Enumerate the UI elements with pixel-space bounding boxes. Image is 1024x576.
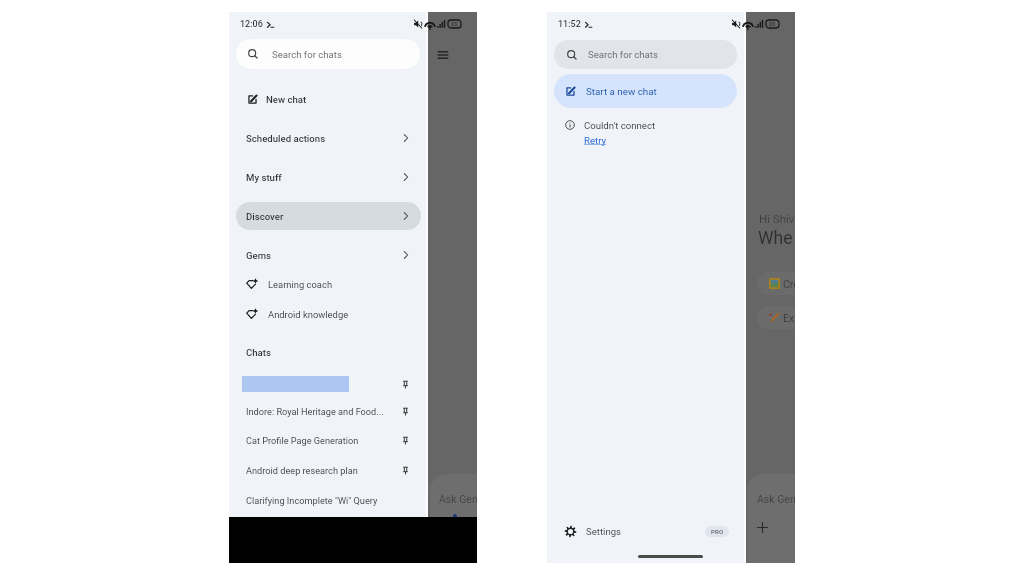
button[interactable]: Discover — [236, 202, 421, 230]
staticText: Start a new chat — [586, 86, 657, 97]
button[interactable]: Gems — [236, 241, 421, 269]
staticText: 12:06 — [240, 19, 263, 30]
staticText: Gems — [246, 250, 271, 261]
staticText: Exp — [783, 312, 795, 324]
staticText: Cre — [783, 278, 795, 290]
button[interactable]: Add attachment — [753, 518, 772, 537]
staticText: My stuff — [246, 172, 282, 183]
button[interactable]: Pin chat — [395, 397, 415, 425]
button[interactable]: Retry — [584, 134, 607, 146]
staticText: 23 — [451, 21, 458, 27]
button[interactable]: Cat Profile Page Generation — [229, 426, 428, 454]
button[interactable]: Pin chat — [395, 370, 415, 398]
staticText: Ask Gem — [757, 493, 795, 505]
button[interactable]: My stuff — [236, 163, 421, 191]
button[interactable]: Settings — [547, 517, 746, 546]
staticText: New chat — [266, 94, 307, 105]
button[interactable]: Start a new chat — [554, 74, 737, 108]
button[interactable]: Android deep research plan — [229, 456, 428, 484]
staticText: Chats — [246, 347, 271, 358]
button[interactable]: New chat — [236, 85, 421, 113]
staticText: Clarifying Incomplete "Wi" Query — [246, 495, 378, 506]
staticText: 11:52 — [558, 19, 581, 30]
button[interactable]: Search for chats — [236, 39, 420, 69]
staticText: Cat Profile Page Generation — [246, 435, 359, 446]
button[interactable]: Selected chat — [229, 370, 428, 398]
button[interactable]: Indore: Royal Heritage and Food... — [229, 397, 428, 425]
staticText: Android deep research plan — [246, 465, 358, 476]
staticText: Ask Gem — [439, 493, 477, 505]
staticText: Android knowledge — [268, 309, 349, 320]
button[interactable]: Learning coach — [236, 270, 421, 298]
button[interactable]: Android knowledge — [236, 300, 421, 328]
button[interactable]: Search for chats — [554, 40, 737, 69]
staticText: Indore: Royal Heritage and Food... — [246, 406, 384, 417]
staticText: Search for chats — [588, 49, 658, 60]
staticText: Scheduled actions — [246, 133, 326, 144]
staticText: Hi Shiv — [759, 212, 795, 225]
staticText: Settings — [586, 526, 622, 537]
staticText: Search for chats — [272, 49, 342, 60]
staticText: Retry — [584, 135, 607, 146]
staticText: Discover — [246, 211, 284, 222]
button[interactable]: Clarifying Incomplete "Wi" Query — [229, 486, 428, 514]
staticText: Couldn't connect — [584, 120, 656, 131]
button[interactable]: Pin chat — [395, 426, 415, 454]
button[interactable]: Pin chat — [395, 456, 415, 484]
staticText: PRO — [711, 528, 724, 535]
staticText: Learning coach — [268, 279, 333, 290]
button[interactable]: Open navigation menu — [429, 41, 457, 69]
staticText: 23 — [769, 21, 776, 27]
button[interactable]: Scheduled actions — [236, 124, 421, 152]
staticText: Whe — [758, 228, 793, 249]
